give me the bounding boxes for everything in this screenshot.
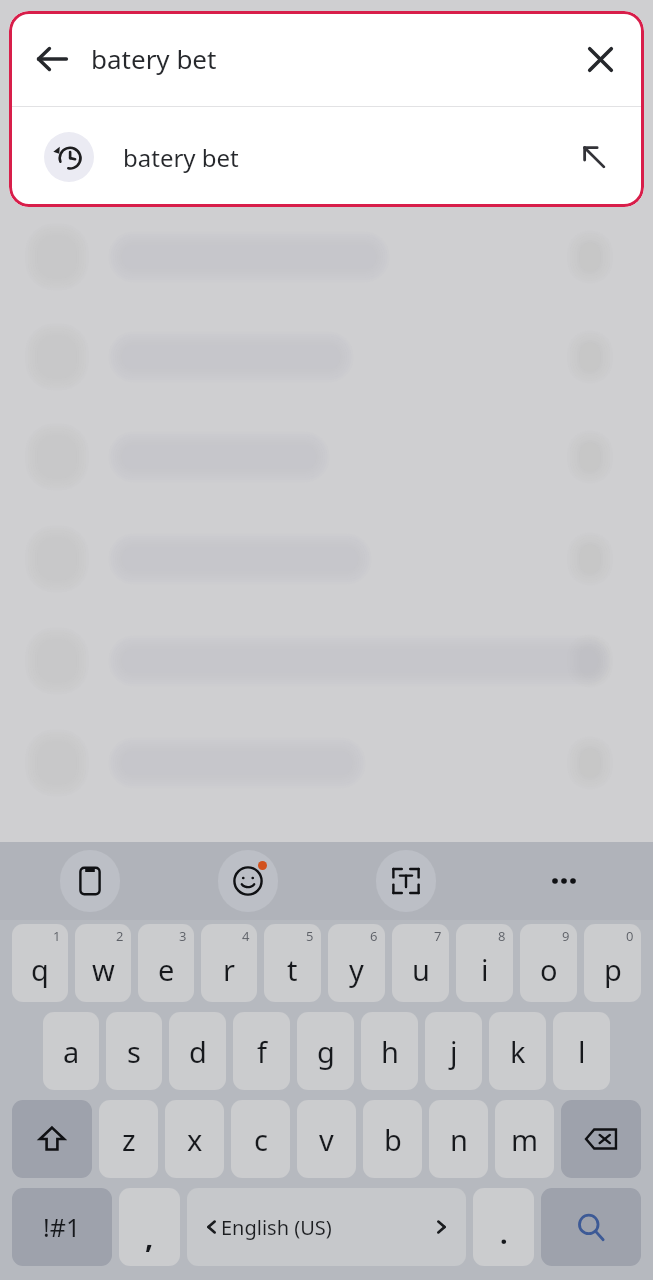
button[interactable]: Clipboard [60, 850, 120, 912]
staticText: h [381, 1032, 399, 1071]
staticText: . [500, 1215, 508, 1252]
button[interactable]: b [363, 1100, 422, 1178]
button[interactable]: Text extraction [376, 850, 436, 912]
staticText: i [481, 950, 489, 989]
button[interactable]: batery bet [9, 107, 644, 207]
button[interactable]: a [43, 1012, 99, 1090]
button[interactable]: 9 [520, 924, 577, 1002]
staticText: b [384, 1120, 402, 1159]
button[interactable]: f [233, 1012, 290, 1090]
staticText: n [450, 1120, 468, 1159]
button[interactable]: n [429, 1100, 488, 1178]
button[interactable]: Shift [12, 1100, 92, 1178]
staticText: d [189, 1032, 207, 1071]
staticText: 6 [370, 927, 378, 945]
staticText: 7 [434, 927, 442, 945]
staticText: j [450, 1032, 458, 1071]
button[interactable]: . [473, 1188, 534, 1266]
button[interactable]: k [489, 1012, 546, 1090]
staticText: 0 [626, 927, 634, 945]
staticText: batery bet [91, 41, 572, 76]
staticText: q [31, 950, 49, 989]
staticText: r [223, 950, 235, 989]
staticText: 5 [306, 927, 314, 945]
staticText: 9 [562, 927, 570, 945]
staticText: 2 [116, 927, 124, 945]
button[interactable]: 7 [392, 924, 449, 1002]
staticText: 3 [179, 927, 187, 945]
staticText: c [254, 1120, 268, 1159]
staticText: u [412, 950, 430, 989]
button[interactable]: Search [541, 1188, 641, 1266]
button[interactable]: , [119, 1188, 180, 1266]
staticText: 1 [53, 927, 61, 945]
button[interactable]: 8 [456, 924, 513, 1002]
button[interactable]: 4 [201, 924, 257, 1002]
staticText: v [319, 1120, 334, 1159]
button[interactable]: English (US) [187, 1188, 466, 1266]
staticText: t [287, 950, 298, 989]
button[interactable]: d [169, 1012, 226, 1090]
button[interactable]: 5 [264, 924, 321, 1002]
button[interactable]: j [425, 1012, 482, 1090]
staticText: a [63, 1032, 80, 1071]
button[interactable]: Backspace [561, 1100, 641, 1178]
staticText: f [257, 1032, 267, 1071]
button[interactable]: !#1 [12, 1188, 112, 1266]
staticText: o [540, 950, 558, 989]
button[interactable]: Back [23, 30, 81, 88]
staticText: g [317, 1032, 335, 1071]
staticText: y [349, 950, 364, 989]
button[interactable]: Clear [572, 31, 628, 87]
button[interactable]: z [99, 1100, 158, 1178]
staticText: w [92, 950, 115, 989]
button[interactable]: l [553, 1012, 610, 1090]
staticText: l [578, 1032, 586, 1071]
button[interactable]: g [297, 1012, 354, 1090]
button[interactable]: 3 [138, 924, 194, 1002]
staticText: p [604, 950, 622, 989]
staticText: x [187, 1120, 203, 1159]
button[interactable]: h [361, 1012, 418, 1090]
staticText: , [145, 1217, 154, 1256]
button[interactable]: c [231, 1100, 290, 1178]
button[interactable]: x [165, 1100, 224, 1178]
staticText: s [127, 1032, 141, 1071]
button[interactable]: 6 [328, 924, 385, 1002]
button[interactable]: 1 [12, 924, 68, 1002]
staticText: batery bet [123, 141, 572, 174]
staticText: k [510, 1032, 526, 1071]
staticText: m [511, 1120, 539, 1159]
button[interactable]: Emoji [218, 850, 278, 912]
button[interactable]: 0 [584, 924, 641, 1002]
button[interactable]: More options [534, 850, 594, 912]
button[interactable]: m [495, 1100, 554, 1178]
staticText: 4 [242, 927, 250, 945]
button[interactable]: Insert suggestion [572, 135, 616, 179]
staticText: z [122, 1120, 136, 1159]
button[interactable]: s [106, 1012, 162, 1090]
button[interactable]: v [297, 1100, 356, 1178]
staticText: !#1 [43, 1210, 81, 1244]
staticText: 8 [498, 927, 506, 945]
staticText: e [158, 950, 175, 989]
staticText: English (US) [221, 1214, 432, 1241]
button[interactable]: 2 [75, 924, 131, 1002]
